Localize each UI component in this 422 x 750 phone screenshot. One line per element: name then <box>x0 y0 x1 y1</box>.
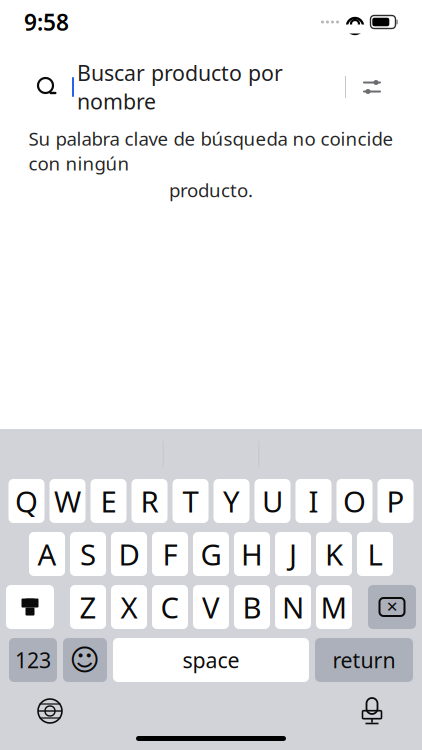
staticText: J <box>289 534 297 573</box>
staticText: space <box>182 646 239 674</box>
staticText: A <box>37 534 56 573</box>
staticText: F <box>162 534 177 573</box>
button[interactable]: W <box>49 479 85 523</box>
staticText: Z <box>79 587 96 626</box>
staticText: D <box>118 534 139 573</box>
button[interactable]: J <box>275 532 311 576</box>
button[interactable]: Buscar producto por nombre <box>18 66 404 108</box>
staticText: N <box>282 587 304 626</box>
button[interactable]: Shift <box>6 585 54 629</box>
button[interactable]: Dictation <box>344 689 400 733</box>
button[interactable]: N <box>275 585 311 629</box>
button[interactable]: D <box>111 532 147 576</box>
button[interactable]: Emoji <box>63 638 107 682</box>
staticText: O <box>343 481 366 520</box>
staticText: Buscar producto por nombre <box>77 59 283 115</box>
staticText: E <box>100 481 116 520</box>
staticText: producto. <box>169 178 253 202</box>
button[interactable]: V <box>193 585 229 629</box>
staticText: P <box>386 481 404 520</box>
staticText: L <box>367 534 382 573</box>
staticText: S <box>80 534 96 573</box>
staticText: M <box>320 587 347 626</box>
button[interactable]: H <box>234 532 270 576</box>
button[interactable]: Y <box>213 479 249 523</box>
staticText: 9:58 <box>24 7 69 37</box>
staticText: B <box>242 587 261 626</box>
button[interactable]: O <box>336 479 372 523</box>
button[interactable]: G <box>193 532 229 576</box>
staticText: return <box>332 646 395 674</box>
staticText: ☺ <box>69 643 100 677</box>
button[interactable]: A <box>29 532 65 576</box>
staticText: U <box>262 481 283 520</box>
button[interactable]: T <box>172 479 208 523</box>
staticText: Q <box>15 481 38 520</box>
button[interactable]: B <box>234 585 270 629</box>
button[interactable]: Q <box>8 479 44 523</box>
button[interactable]: S <box>70 532 106 576</box>
staticText: V <box>202 587 220 626</box>
button[interactable]: Z <box>70 585 106 629</box>
button[interactable]: M <box>316 585 352 629</box>
staticText: 123 <box>15 646 51 674</box>
button[interactable]: K <box>316 532 352 576</box>
staticText: X <box>120 587 137 626</box>
staticText: Y <box>223 481 240 520</box>
button[interactable]: space <box>113 638 309 682</box>
button[interactable]: U <box>254 479 290 523</box>
button[interactable]: Delete <box>368 585 416 629</box>
staticText: T <box>182 481 198 520</box>
staticText: ✕ <box>386 599 398 615</box>
button[interactable]: E <box>90 479 126 523</box>
button[interactable]: return <box>315 638 413 682</box>
staticText: W <box>54 481 81 520</box>
staticText: C <box>160 587 179 626</box>
staticText: I <box>308 481 318 520</box>
button[interactable]: X <box>111 585 147 629</box>
staticText: K <box>325 534 343 573</box>
staticText: Su palabra clave de búsqueda no coincide… <box>28 126 393 176</box>
staticText: R <box>140 481 158 520</box>
button[interactable]: 123 <box>9 638 57 682</box>
button[interactable]: P <box>377 479 413 523</box>
button[interactable]: R <box>131 479 167 523</box>
button[interactable]: Next keyboard <box>22 689 78 733</box>
button[interactable]: I <box>295 479 331 523</box>
staticText: H <box>241 534 263 573</box>
button[interactable]: L <box>357 532 393 576</box>
staticText: G <box>200 534 221 573</box>
button[interactable]: F <box>152 532 188 576</box>
button[interactable]: C <box>152 585 188 629</box>
